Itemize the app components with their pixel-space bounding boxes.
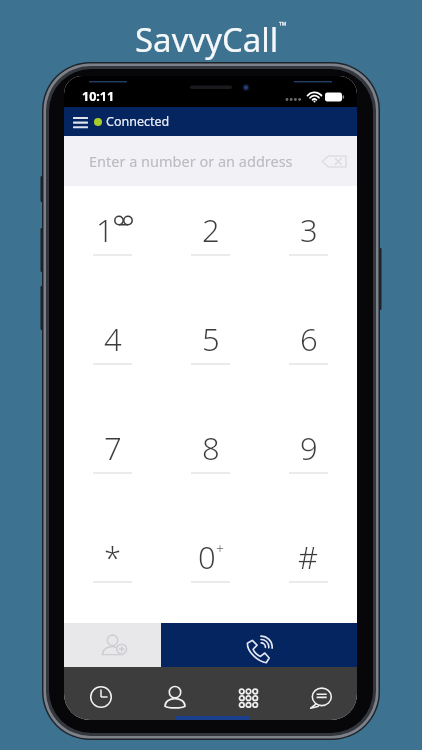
staticText: ™ (279, 18, 287, 32)
staticText: 2 (202, 209, 220, 251)
button[interactable]: 7 (64, 405, 161, 514)
staticText: 4 (104, 318, 122, 360)
staticText: 0 (198, 536, 216, 578)
staticText: SavvyCall (135, 17, 279, 62)
staticText: 8 (202, 427, 220, 469)
button[interactable]: 2 (161, 186, 259, 296)
staticText: 3 (300, 209, 318, 251)
staticText: Enter a number or an address (89, 151, 293, 171)
button[interactable]: Menu (68, 110, 92, 134)
staticText: + (216, 539, 224, 558)
button[interactable]: Add contact (64, 623, 161, 667)
button[interactable]: Messages (284, 667, 357, 720)
button[interactable]: 6 (259, 296, 357, 405)
button[interactable]: 3 (259, 186, 357, 296)
button[interactable]: 0 (161, 514, 259, 623)
button[interactable]: Contacts (138, 667, 211, 720)
button[interactable]: 1 (64, 186, 161, 296)
button[interactable]: 4 (64, 296, 161, 405)
button[interactable]: Call (161, 623, 357, 667)
staticText: 10:11 (82, 88, 115, 105)
staticText: 1 (96, 209, 114, 251)
button[interactable]: 8 (161, 405, 259, 514)
staticText: 9 (300, 427, 318, 469)
staticText: # (298, 536, 319, 578)
button[interactable]: Enter a number or an address (64, 136, 357, 186)
staticText: 6 (300, 318, 318, 360)
button[interactable]: # (259, 514, 357, 623)
button[interactable]: Keypad (211, 667, 284, 720)
button[interactable]: * (64, 514, 161, 623)
staticText: * (104, 536, 122, 578)
button[interactable]: Backspace (315, 142, 353, 180)
staticText: 5 (202, 318, 220, 360)
staticText: Connected (106, 113, 170, 130)
staticText: 7 (104, 427, 122, 469)
button[interactable]: Connected (92, 113, 170, 130)
button[interactable]: Recents (64, 667, 138, 720)
button[interactable]: 5 (161, 296, 259, 405)
button[interactable]: 9 (259, 405, 357, 514)
